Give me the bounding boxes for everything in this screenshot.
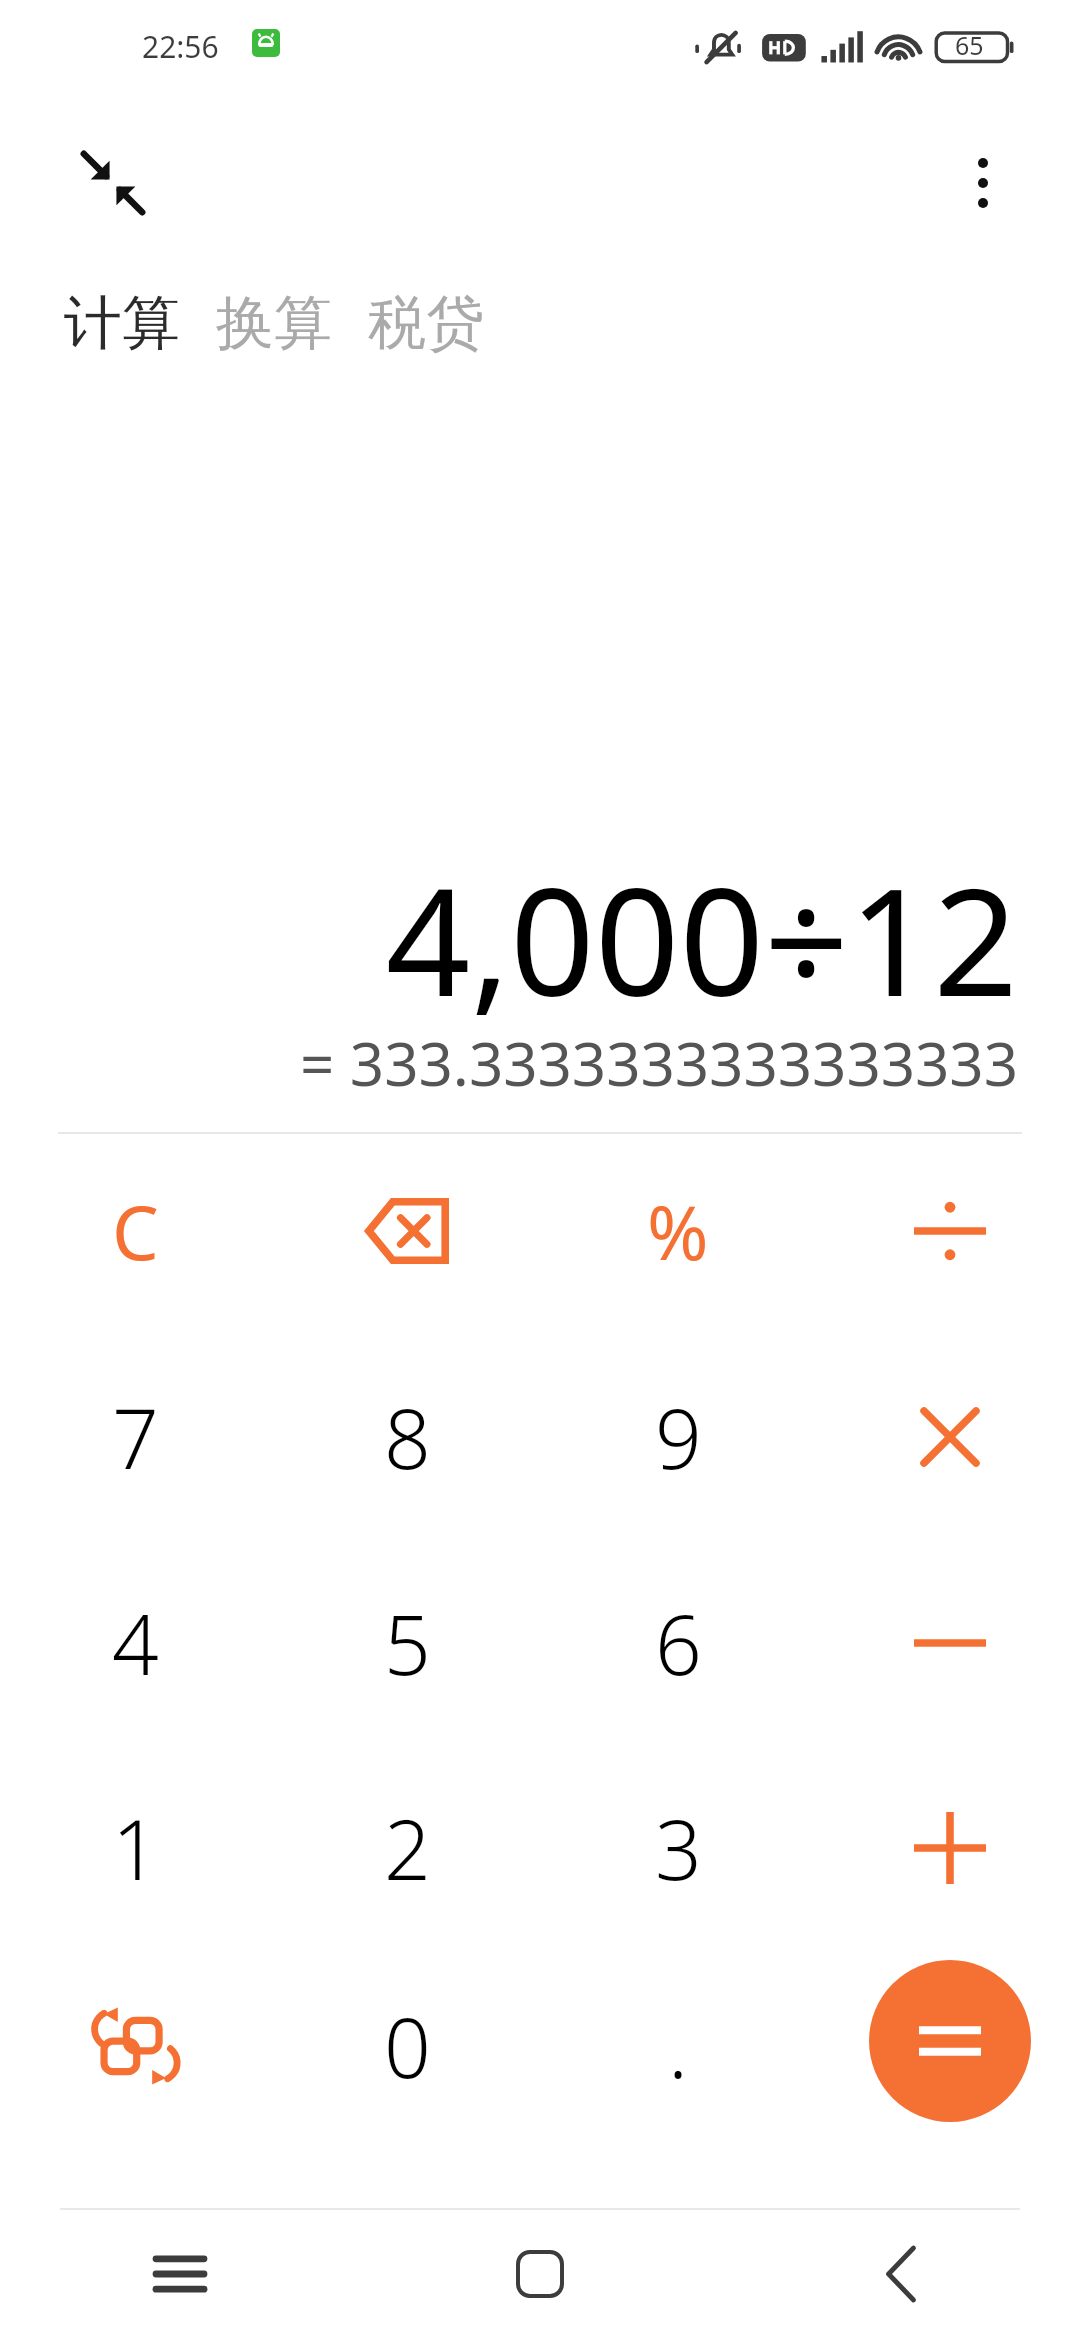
button[interactable]: 换算 [212, 279, 336, 368]
button[interactable]: Percent [558, 1131, 798, 1331]
button[interactable]: 7 [15, 1337, 255, 1537]
staticText: % [647, 1181, 709, 1282]
button[interactable]: 6 [558, 1543, 798, 1743]
staticText: 1 [112, 1792, 159, 1904]
button[interactable]: Clear [15, 1131, 255, 1331]
staticText: 6 [655, 1587, 702, 1699]
button[interactable]: 8 [287, 1337, 527, 1537]
button[interactable]: 1 [15, 1748, 255, 1948]
button[interactable]: 计算 [60, 279, 184, 368]
button[interactable]: Backspace [287, 1131, 527, 1331]
staticText: 0 [384, 1990, 431, 2102]
staticText: 税贷 [368, 287, 484, 360]
staticText: 4 [112, 1587, 159, 1699]
staticText: 2 [384, 1792, 431, 1904]
staticText: 7 [112, 1381, 159, 1493]
staticText: 8 [384, 1381, 431, 1493]
staticText: 3 [655, 1792, 702, 1904]
staticText: 22:56 [142, 26, 219, 67]
button[interactable]: Unit converter [15, 1946, 255, 2146]
staticText: 4,000÷12 [0, 838, 1018, 1040]
button[interactable]: Collapse [70, 140, 156, 226]
button[interactable]: 9 [558, 1337, 798, 1537]
staticText: 9 [655, 1381, 702, 1493]
staticText: C [112, 1181, 159, 1282]
staticText: 65 [955, 28, 984, 62]
staticText: 换算 [216, 287, 332, 360]
button[interactable]: More options [940, 140, 1026, 226]
button[interactable]: Recents [0, 2208, 360, 2340]
staticText: 5 [384, 1587, 431, 1699]
button[interactable]: Plus [830, 1748, 1070, 1948]
staticText: . [668, 1990, 689, 2102]
staticText: 计算 [64, 287, 180, 360]
button[interactable]: 3 [558, 1748, 798, 1948]
button[interactable]: Multiply [830, 1337, 1070, 1537]
button[interactable]: Minus [830, 1543, 1070, 1743]
button[interactable]: Back [720, 2208, 1080, 2340]
button[interactable]: Divide [830, 1131, 1070, 1331]
button[interactable]: 5 [287, 1543, 527, 1743]
button[interactable]: Home [360, 2208, 720, 2340]
button[interactable]: Equals [869, 1960, 1031, 2122]
button[interactable]: 2 [287, 1748, 527, 1948]
button[interactable]: 4 [15, 1543, 255, 1743]
button[interactable]: . [558, 1946, 798, 2146]
staticText: = 333.3333333333333333 [0, 1022, 1018, 1104]
button[interactable]: 税贷 [364, 279, 488, 368]
button[interactable]: 0 [287, 1946, 527, 2146]
